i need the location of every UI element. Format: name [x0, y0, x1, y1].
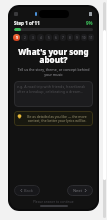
staticText: Step 1 of 11: [14, 20, 40, 26]
staticText: Tell us the story, theme, or concept beh…: [15, 67, 92, 77]
staticText: 5: [48, 36, 50, 40]
button[interactable]: 6: [53, 34, 59, 41]
button[interactable]: 5: [45, 34, 52, 41]
button[interactable]: 10: [81, 34, 87, 41]
staticText: 8: [69, 36, 71, 40]
staticText: e.g. A road trip with friends, heartbrea…: [17, 84, 90, 94]
button[interactable]: Next: [67, 185, 93, 196]
staticText: 9: [76, 36, 78, 40]
staticText: Be as detailed as you like — the more co…: [24, 114, 90, 123]
staticText: Back: [24, 188, 34, 193]
staticText: 7: [62, 36, 64, 40]
button[interactable]: 4: [37, 34, 44, 41]
button[interactable]: 2: [21, 34, 28, 41]
button[interactable]: 7: [60, 34, 66, 41]
button[interactable]: 1: [13, 34, 20, 41]
button[interactable]: 8: [67, 34, 73, 41]
staticText: What's your song about?: [15, 46, 92, 65]
button[interactable]: Back: [14, 185, 40, 196]
button[interactable]: 9: [74, 34, 80, 41]
staticText: 4: [40, 36, 42, 40]
button[interactable]: e.g. A road trip with friends, heartbrea…: [14, 81, 93, 107]
staticText: Please answer to continue: [33, 199, 74, 203]
button[interactable]: 11: [88, 34, 94, 41]
staticText: 9%: [86, 20, 93, 26]
staticText: 11: [89, 36, 93, 40]
staticText: 3: [32, 36, 34, 40]
staticText: 10: [82, 36, 86, 40]
staticText: 1: [16, 36, 18, 40]
button[interactable]: 3: [29, 34, 36, 41]
staticText: Next: [73, 188, 83, 193]
staticText: 6: [55, 36, 57, 40]
other: Tip: [17, 114, 22, 119]
staticText: 2: [24, 36, 26, 40]
